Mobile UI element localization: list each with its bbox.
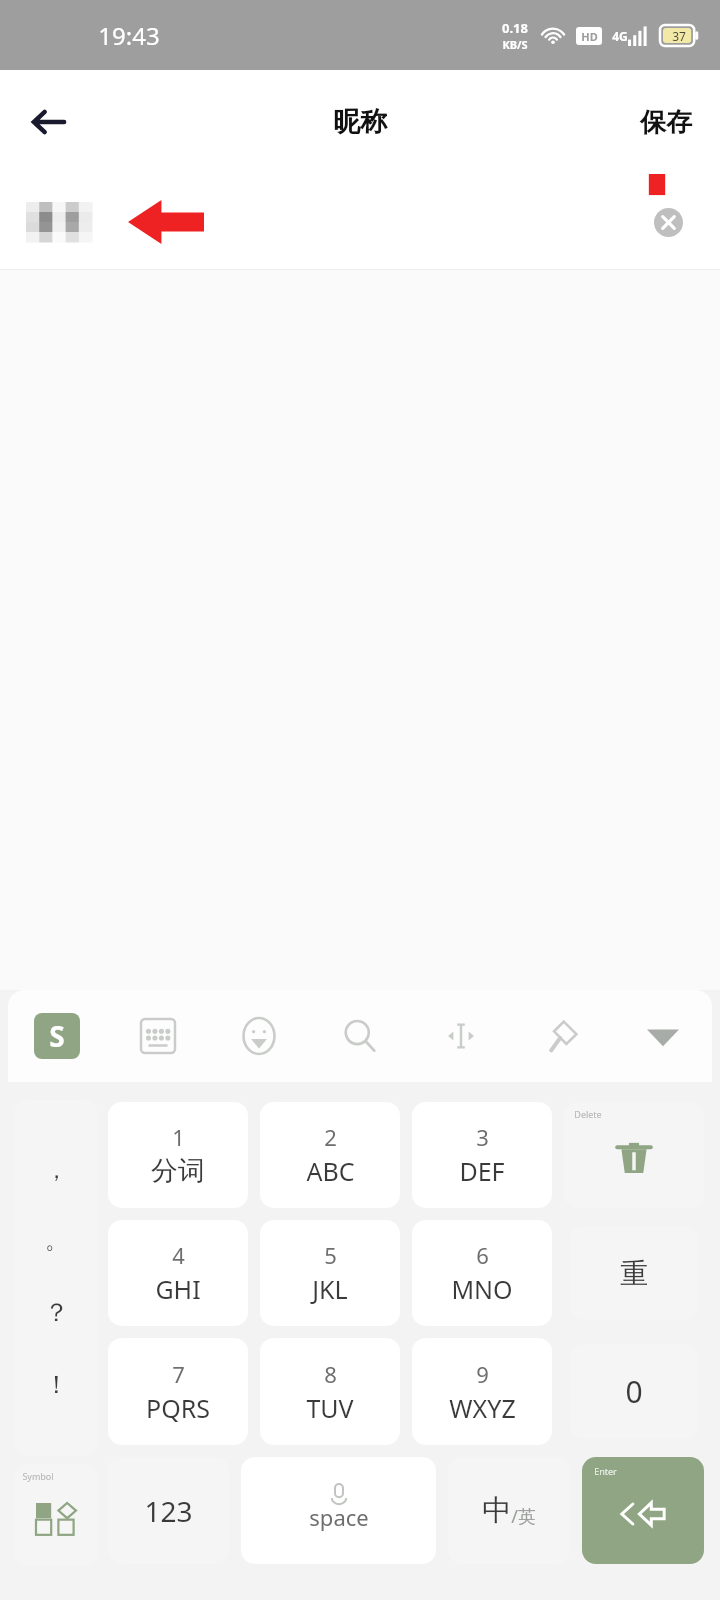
staticText: ？ xyxy=(44,1297,69,1328)
button[interactable]: 2 xyxy=(260,1102,400,1208)
staticText: HD xyxy=(581,29,598,44)
button[interactable]: Symbol xyxy=(14,1464,98,1566)
staticText: 9 xyxy=(476,1359,489,1389)
staticText: 中 xyxy=(482,1492,511,1529)
staticText: 0 xyxy=(625,1371,643,1412)
button[interactable]: Theme xyxy=(535,1009,589,1063)
button[interactable]: 1 xyxy=(108,1102,248,1208)
button[interactable]: 5 xyxy=(260,1220,400,1326)
staticText: 保存 xyxy=(640,106,692,139)
button[interactable]: 保存 xyxy=(630,96,702,149)
staticText: 3 xyxy=(476,1122,489,1152)
staticText: KB/S xyxy=(502,37,528,52)
button[interactable]: 0 xyxy=(570,1344,698,1439)
button[interactable]: Move cursor xyxy=(434,1009,488,1063)
staticText: 2 xyxy=(324,1122,337,1152)
button[interactable]: space xyxy=(241,1457,436,1564)
staticText: WXYZ xyxy=(449,1391,516,1425)
button[interactable]: 中 xyxy=(448,1457,570,1564)
button[interactable]: Search xyxy=(333,1009,387,1063)
button[interactable]: Back xyxy=(18,91,80,153)
staticText: space xyxy=(309,1502,369,1532)
staticText: TUV xyxy=(306,1391,354,1425)
button[interactable]: 9 xyxy=(412,1338,552,1445)
staticText: 7 xyxy=(172,1359,185,1389)
staticText: 4 xyxy=(172,1240,185,1270)
button[interactable]: Sogou input xyxy=(30,1009,84,1063)
button[interactable]: Clear text xyxy=(646,200,690,244)
staticText: 0.18 xyxy=(502,19,528,37)
staticText: Enter xyxy=(594,1465,617,1477)
button[interactable]: 6 xyxy=(412,1220,552,1326)
staticText: 分词 xyxy=(151,1154,205,1188)
staticText: 37 xyxy=(672,28,686,44)
staticText: 重 xyxy=(620,1256,648,1291)
button[interactable]: 重 xyxy=(570,1226,698,1320)
button[interactable]: 8 xyxy=(260,1338,400,1445)
staticText: Delete xyxy=(574,1108,602,1120)
button[interactable]: 123 xyxy=(108,1457,229,1564)
staticText: 昵称 xyxy=(333,105,387,139)
button[interactable]: Emoji xyxy=(232,1009,286,1063)
staticText: 1 xyxy=(172,1122,185,1152)
staticText: S xyxy=(49,1017,65,1055)
button[interactable]: Hide keyboard xyxy=(636,1009,690,1063)
staticText: Symbol xyxy=(22,1470,54,1482)
button[interactable]: Keyboard layout xyxy=(131,1009,185,1063)
staticText: 5 xyxy=(324,1240,337,1270)
staticText: DEF xyxy=(459,1154,505,1188)
staticText: GHI xyxy=(155,1272,201,1306)
staticText: ！ xyxy=(44,1369,69,1400)
button[interactable]: ， xyxy=(14,1100,98,1456)
staticText: 。 xyxy=(45,1226,68,1255)
staticText: /英 xyxy=(511,1504,536,1529)
staticText: JKL xyxy=(312,1272,348,1306)
staticText: PQRS xyxy=(146,1391,210,1425)
staticText: MNO xyxy=(451,1272,513,1306)
button[interactable]: 3 xyxy=(412,1102,552,1208)
button[interactable]: 7 xyxy=(108,1338,248,1445)
staticText: 123 xyxy=(144,1492,193,1530)
button[interactable]: Enter xyxy=(582,1457,704,1564)
staticText: ， xyxy=(45,1156,68,1185)
staticText: 4G xyxy=(612,28,628,44)
staticText: ABC xyxy=(306,1154,355,1188)
button[interactable]: Delete xyxy=(564,1102,704,1208)
staticText: 8 xyxy=(324,1359,337,1389)
staticText: 19:43 xyxy=(98,19,160,52)
staticText: 6 xyxy=(476,1240,489,1270)
button[interactable]: 4 xyxy=(108,1220,248,1326)
